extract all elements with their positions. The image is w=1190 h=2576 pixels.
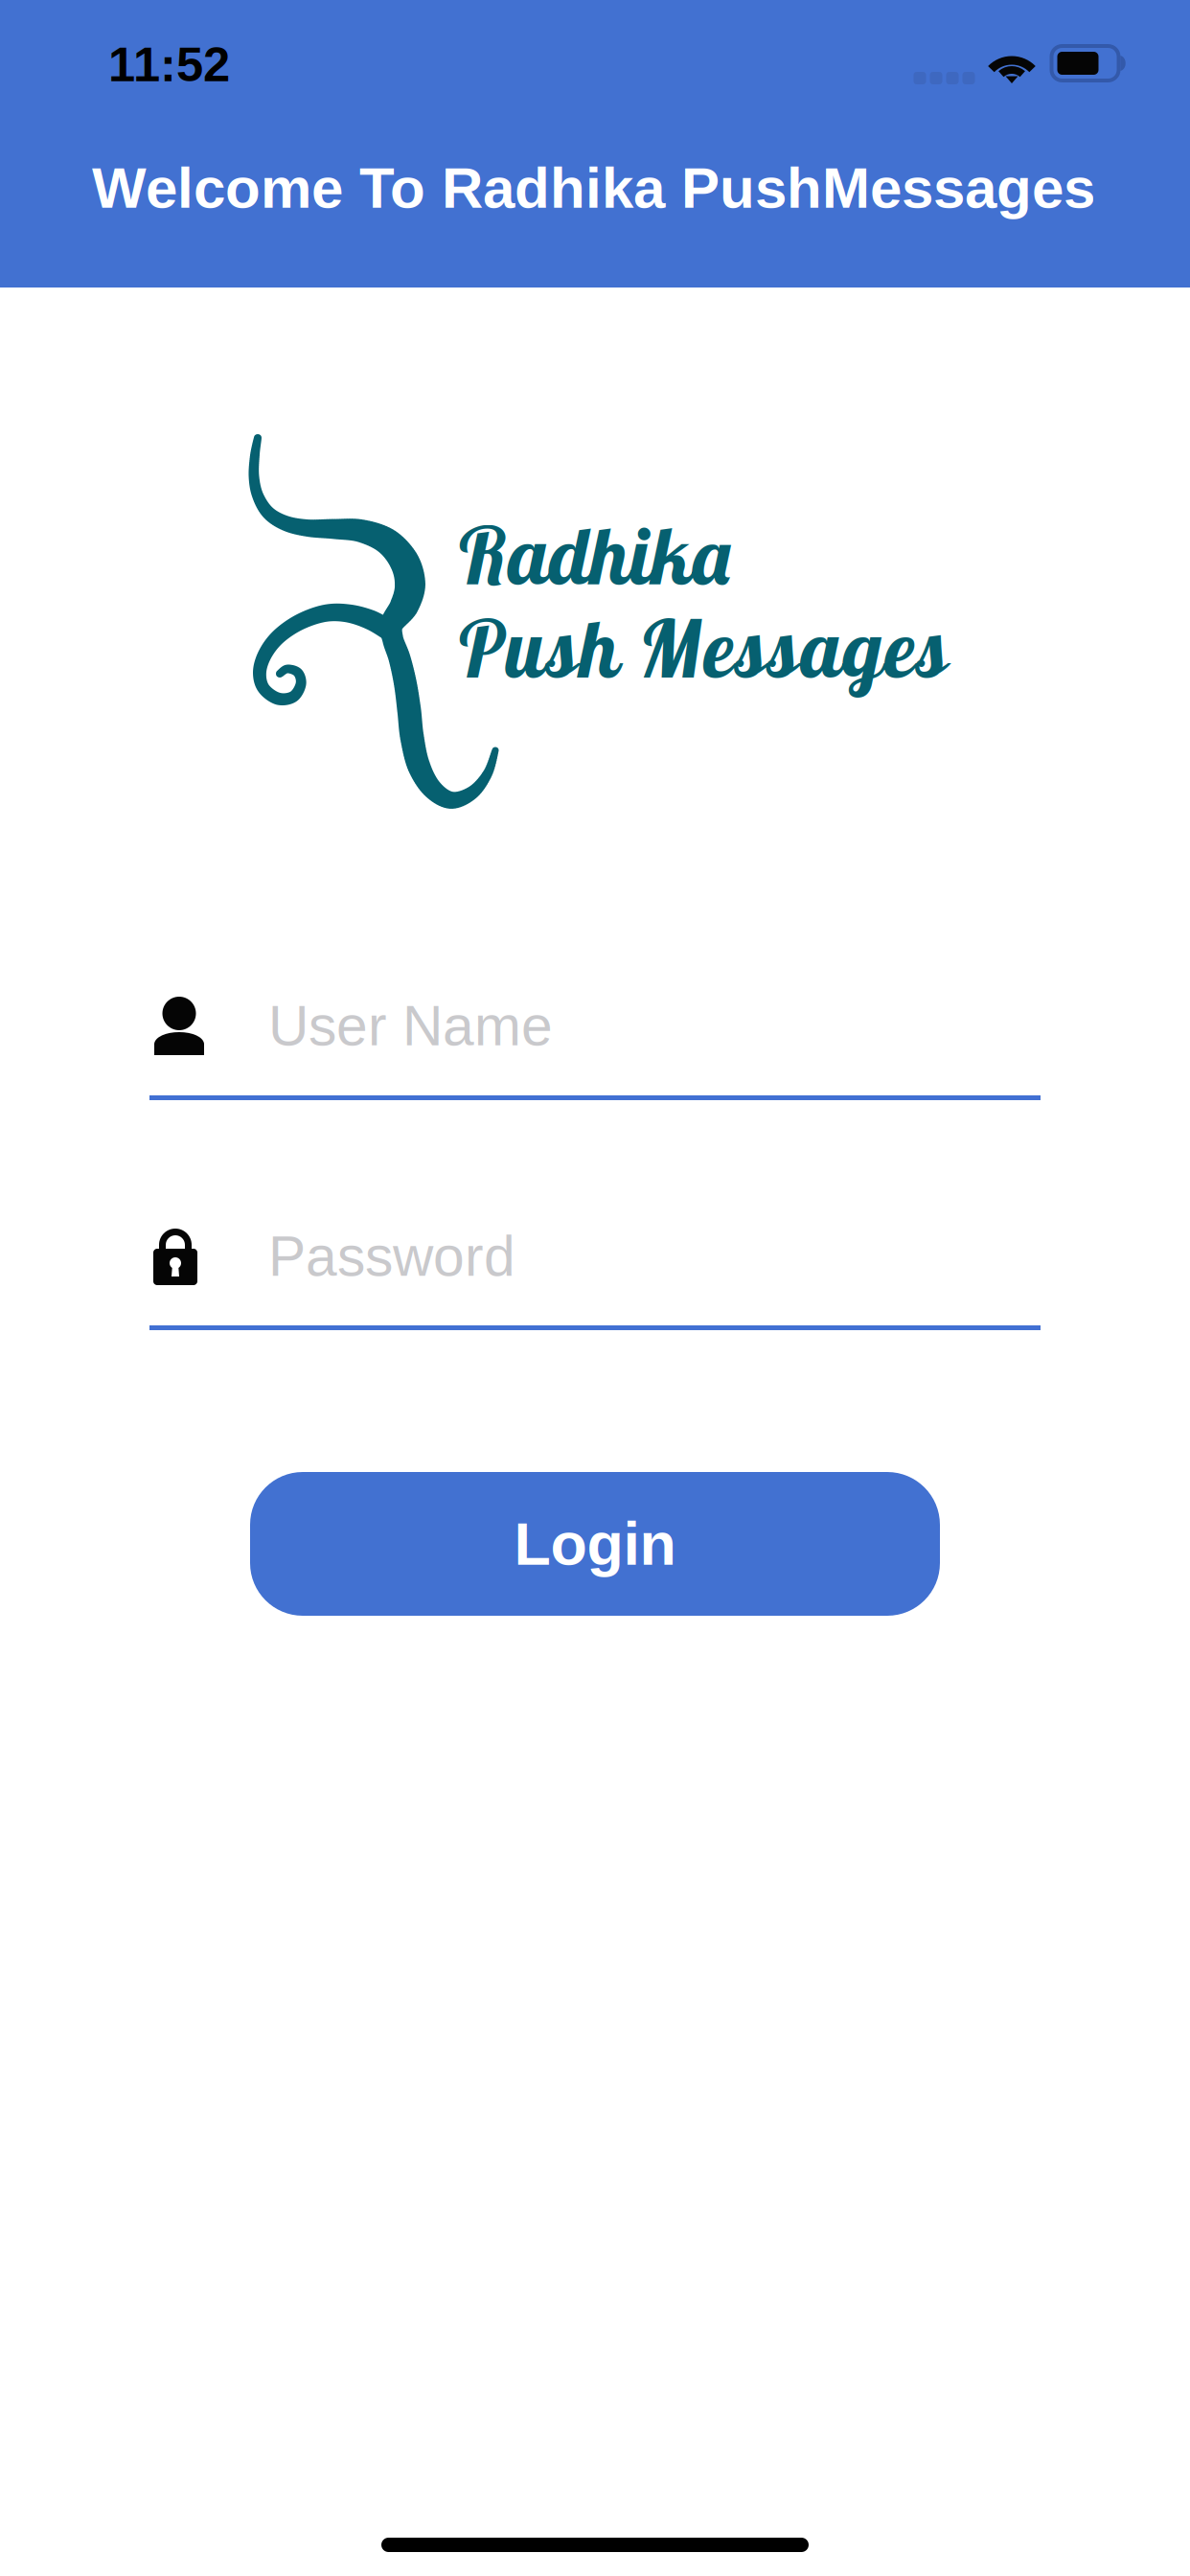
staticText: 11:52 [108,37,230,92]
staticText: User Name [268,994,553,1057]
button[interactable]: Password [149,1228,1041,1330]
button[interactable]: Login [250,1472,940,1616]
staticText: Welcome To Radhika PushMessages [92,156,1095,220]
staticText: Push Messages [455,598,947,697]
staticText: Radhika [455,505,734,604]
staticText: Password [268,1225,515,1288]
button[interactable]: User Name [149,997,1041,1100]
staticText: Login [514,1510,676,1577]
